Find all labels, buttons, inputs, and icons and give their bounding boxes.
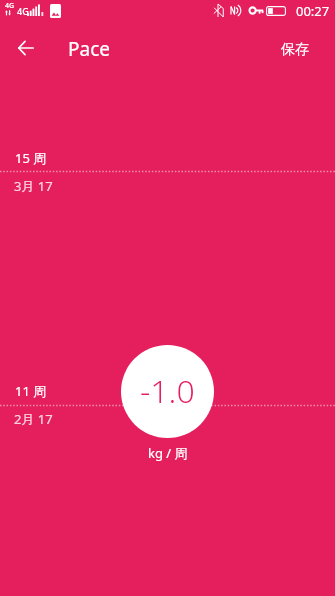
button[interactable]: 保存 xyxy=(265,26,325,74)
button[interactable]: 11 周 xyxy=(0,373,335,429)
staticText: kg / 周 xyxy=(148,444,188,462)
staticText: 4G xyxy=(5,1,15,11)
staticText: 保存 xyxy=(281,41,309,59)
staticText: 11 周 xyxy=(15,382,47,400)
button[interactable]: Back xyxy=(2,24,50,72)
button[interactable]: 15 周 xyxy=(0,140,335,196)
staticText: 3月 17 xyxy=(14,177,53,195)
staticText: -1.0 xyxy=(140,369,195,413)
staticText: 4G xyxy=(17,5,29,17)
button[interactable]: Weekly pace xyxy=(121,345,214,438)
staticText: Pace xyxy=(68,36,110,62)
staticText: 15 周 xyxy=(15,149,47,167)
staticText: 00:27 xyxy=(296,2,330,20)
staticText: 2月 17 xyxy=(14,410,53,428)
